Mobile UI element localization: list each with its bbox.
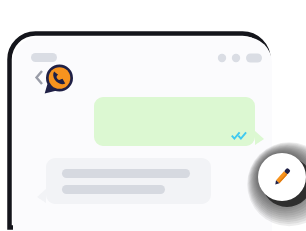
button[interactable]: More options <box>214 50 264 66</box>
button[interactable]: Contact profile <box>46 63 74 91</box>
button[interactable]: Back <box>34 66 50 88</box>
button[interactable]: Compose message <box>258 153 306 201</box>
